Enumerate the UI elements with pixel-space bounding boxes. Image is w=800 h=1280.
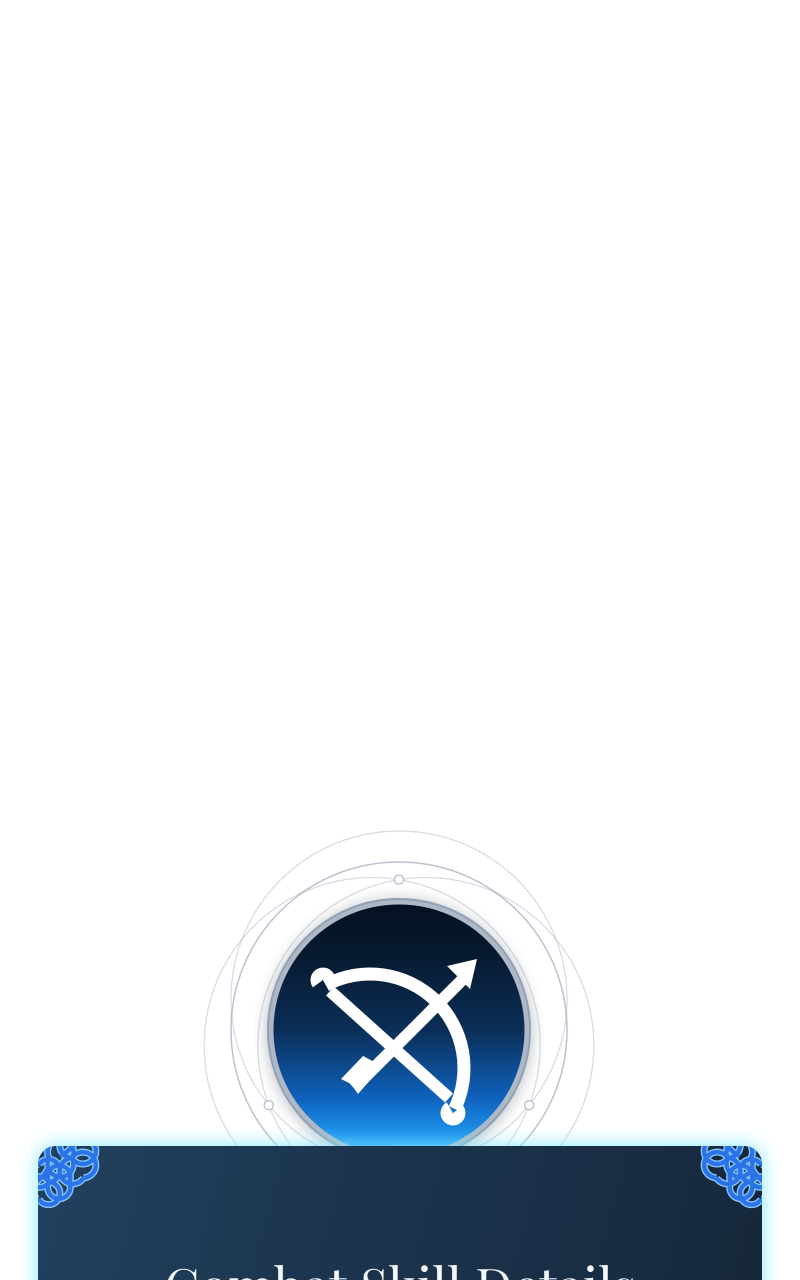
staticText: Combat Skill Details [164, 1250, 636, 1280]
